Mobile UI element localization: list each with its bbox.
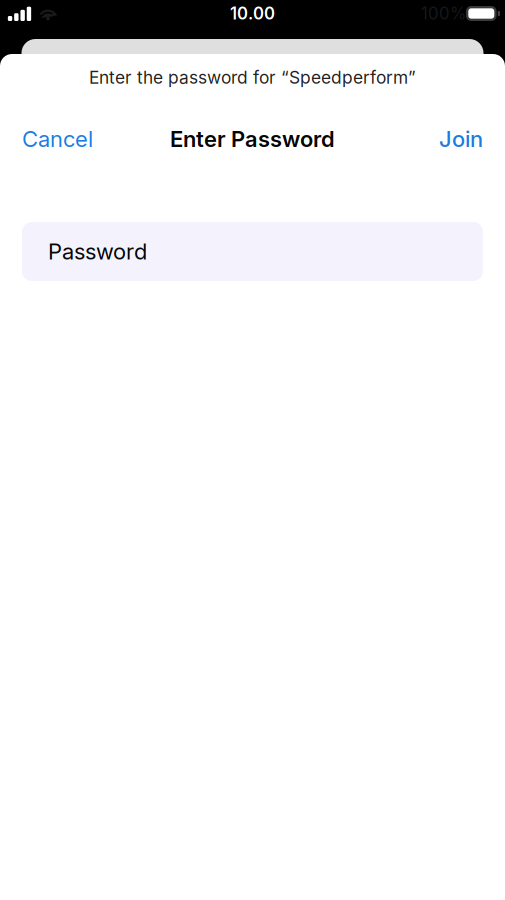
staticText: Cancel	[22, 126, 93, 152]
staticText: Join	[439, 126, 483, 152]
staticText: Enter the password for “Speedperform”	[89, 67, 416, 88]
staticText: 100%	[421, 3, 466, 24]
staticText: Enter Password	[170, 126, 335, 152]
staticText: Password	[48, 238, 147, 265]
button[interactable]: Cancel	[22, 121, 109, 157]
staticText: 10.00	[230, 3, 275, 24]
button[interactable]: Password	[22, 222, 483, 281]
button[interactable]: Join	[423, 121, 483, 157]
